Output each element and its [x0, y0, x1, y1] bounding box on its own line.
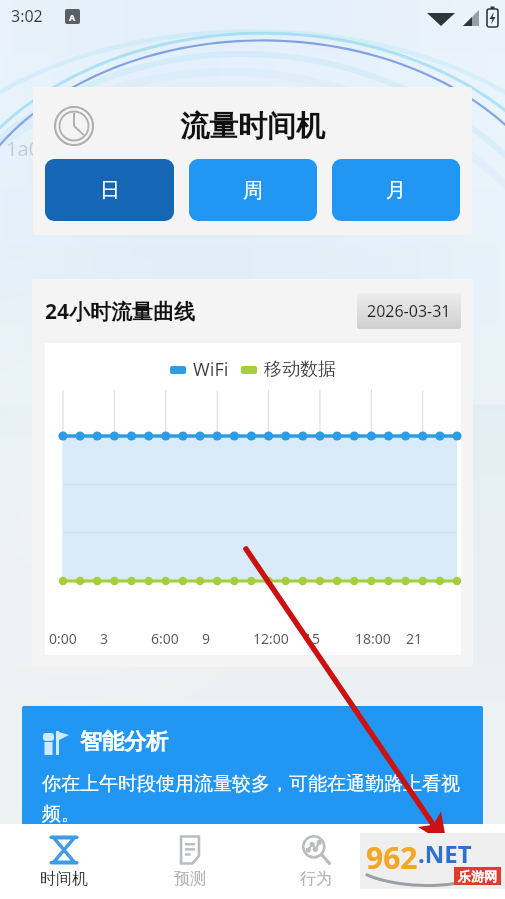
button[interactable]: 2026-03-31 — [367, 300, 451, 322]
staticText: 24小时流量曲线 — [45, 297, 196, 326]
other: 行为 — [300, 834, 332, 866]
staticText: 我的 — [426, 869, 458, 889]
staticText: 日 — [100, 178, 120, 203]
staticText: 21 — [406, 629, 423, 648]
staticText: 行为 — [300, 869, 332, 889]
staticText: 移动数据 — [264, 358, 336, 381]
button[interactable]: 日 — [45, 159, 174, 221]
button[interactable]: 我的 — [379, 824, 505, 899]
staticText: 你在上午时段使用流量较多，可能在通勤路上看视频。 — [42, 772, 467, 826]
button[interactable]: 周 — [189, 159, 317, 221]
staticText: 6:00 — [151, 629, 179, 648]
staticText: 智能分析 — [80, 728, 168, 756]
staticText: 周 — [243, 178, 263, 203]
staticText: 0:00 — [49, 629, 77, 648]
staticText: WiFi — [193, 357, 229, 382]
staticText: 时间机 — [40, 869, 88, 889]
other: 我的 — [426, 834, 458, 866]
button[interactable]: 行为 — [253, 824, 379, 899]
staticText: 2026-03-31 — [367, 300, 451, 322]
staticText: 3 — [100, 629, 109, 648]
other: 预测 — [174, 834, 206, 866]
staticText: 3:02 — [11, 5, 43, 27]
staticText: 预测 — [174, 869, 206, 889]
staticText: 962 — [366, 837, 418, 878]
staticText: 乐游网 — [458, 868, 497, 884]
other: 时间机 — [48, 834, 80, 866]
staticText: 15 — [304, 629, 321, 648]
staticText: 流量时间机 — [180, 108, 325, 145]
button[interactable]: 月 — [332, 159, 460, 221]
button[interactable]: 预测 — [127, 824, 253, 899]
staticText: 月 — [386, 178, 406, 203]
staticText: .NET — [418, 837, 472, 870]
staticText: 12:00 — [253, 629, 289, 648]
button[interactable]: 时间机 — [0, 824, 127, 899]
staticText: 18:00 — [355, 629, 391, 648]
staticText: 9 — [202, 629, 211, 648]
staticText: A — [69, 11, 76, 23]
staticText: 1a0e15 — [6, 135, 75, 162]
